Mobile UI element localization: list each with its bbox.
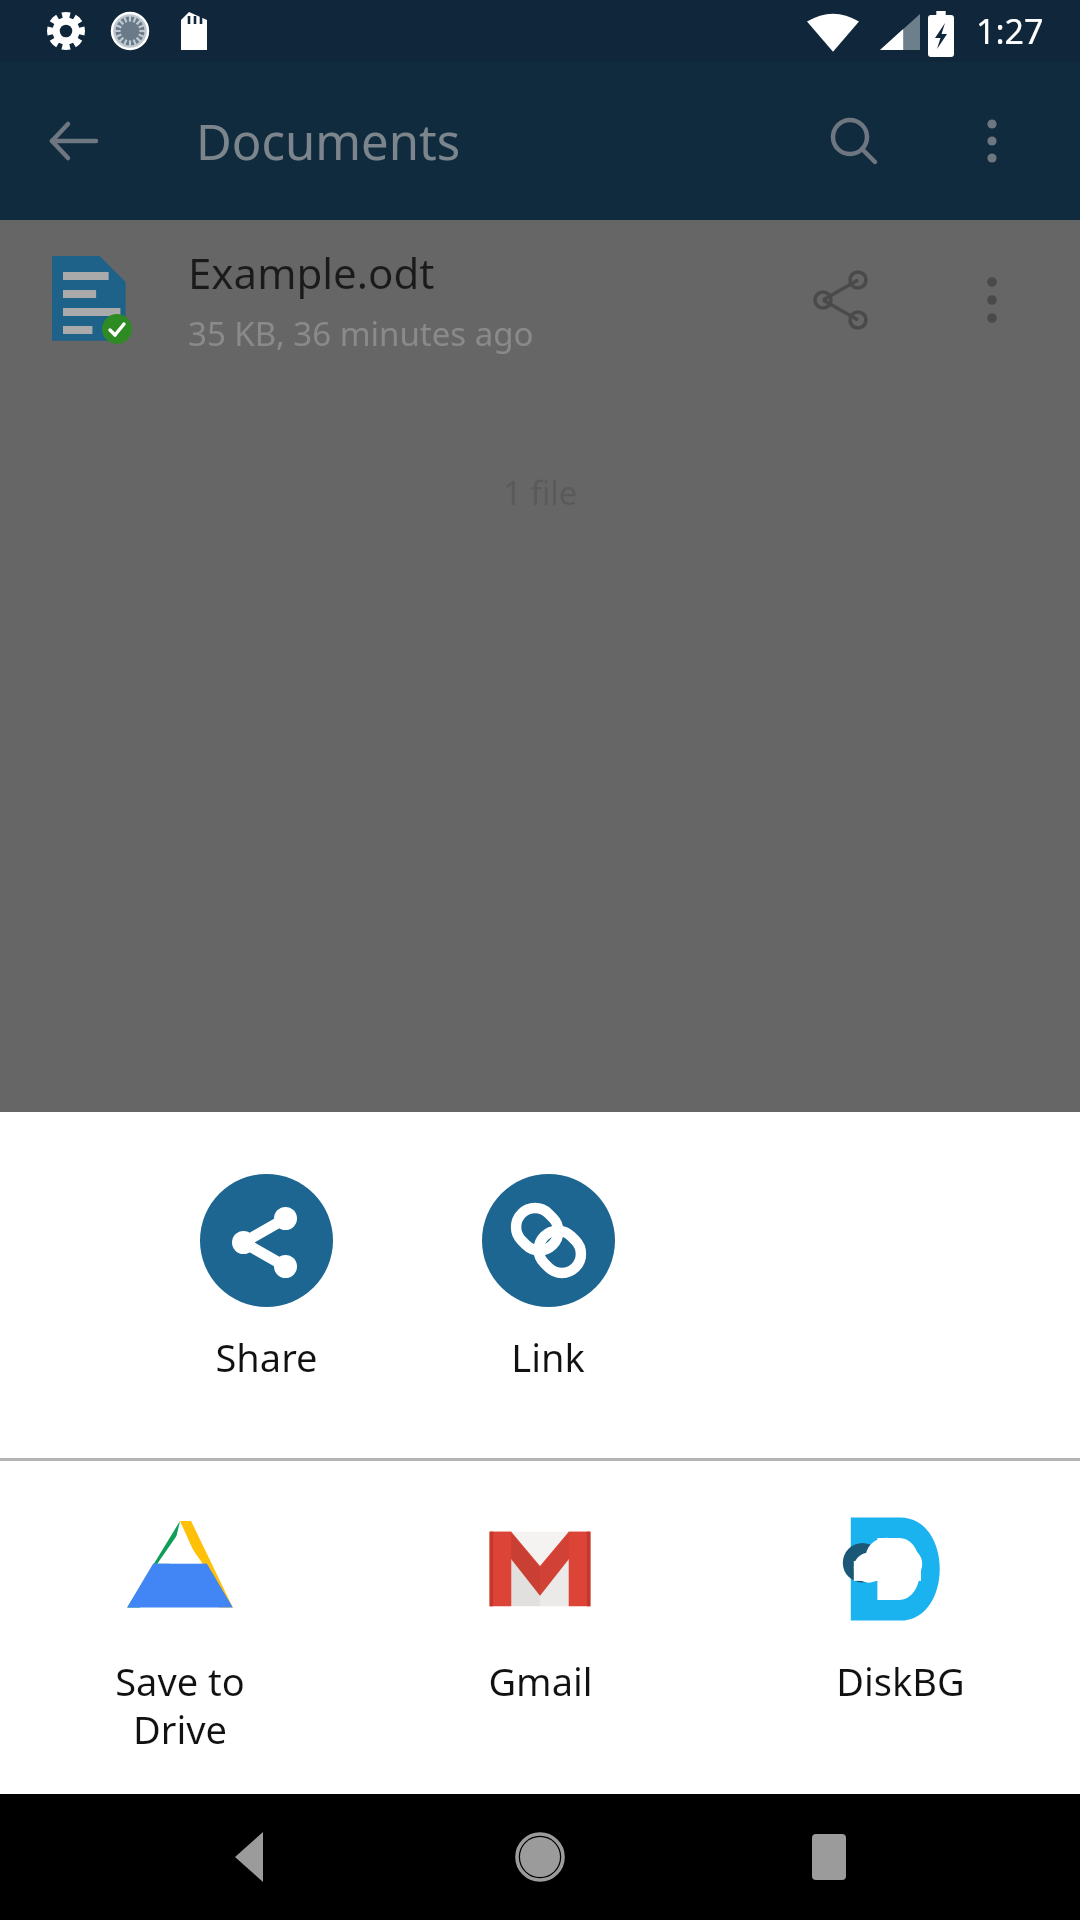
button[interactable]: More options	[944, 93, 1040, 189]
staticText: DiskBG	[836, 1655, 965, 1707]
button[interactable]: Share	[194, 1174, 338, 1383]
button[interactable]: Navigate up	[26, 93, 122, 189]
staticText: Save to Drive	[115, 1655, 245, 1755]
staticText: 1 file	[503, 470, 578, 515]
staticText: 1:27	[976, 8, 1044, 54]
button[interactable]: Link	[476, 1174, 620, 1383]
button[interactable]: Home	[485, 1802, 595, 1912]
button[interactable]: More options for Example.odt	[944, 252, 1040, 348]
staticText: Share	[215, 1331, 318, 1383]
button[interactable]: Back	[196, 1802, 306, 1912]
staticText: 35 KB, 36 minutes ago	[188, 311, 534, 356]
button[interactable]: Search	[804, 93, 900, 189]
button[interactable]: Recent apps	[774, 1802, 884, 1912]
button[interactable]: Example.odt	[0, 220, 1080, 380]
button[interactable]: Share file	[794, 252, 890, 348]
button[interactable]: Gmail	[420, 1509, 660, 1707]
staticText: Example.odt	[188, 244, 435, 301]
staticText: Documents	[196, 108, 461, 175]
staticText: Link	[511, 1331, 585, 1383]
button[interactable]: Save to Drive	[60, 1509, 300, 1755]
button[interactable]: DiskBG	[780, 1509, 1020, 1707]
staticText: Gmail	[488, 1655, 593, 1707]
